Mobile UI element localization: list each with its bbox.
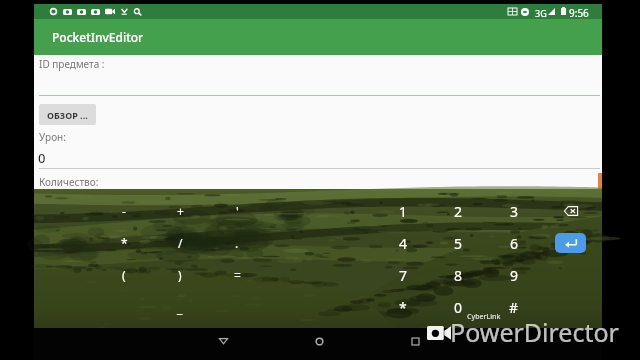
button[interactable]: '	[210, 196, 264, 226]
staticText: 1	[399, 202, 408, 221]
staticText: -	[122, 203, 126, 219]
button[interactable]: 0	[431, 292, 485, 322]
staticText: 3	[510, 202, 519, 221]
staticText: '	[236, 203, 239, 219]
other: PowerDirector	[427, 326, 451, 340]
staticText: 5	[454, 234, 463, 253]
staticText: 7	[399, 266, 408, 285]
button[interactable]: Enter	[555, 233, 586, 253]
staticText: Количество:	[39, 175, 99, 189]
button[interactable]: (	[97, 260, 151, 290]
staticText: +	[177, 203, 184, 219]
staticText: 4	[399, 234, 408, 253]
button[interactable]: )	[153, 260, 207, 290]
staticText: )	[178, 267, 182, 283]
staticText: 0	[454, 298, 463, 317]
button[interactable]: =	[210, 260, 264, 290]
button[interactable]: ОБЗОР ...	[39, 104, 96, 125]
staticText: ID предмета :	[39, 57, 105, 71]
button[interactable]: .	[210, 228, 264, 258]
staticText: 0	[38, 149, 46, 167]
button[interactable]: Home	[300, 328, 338, 354]
staticText: Урон:	[39, 130, 66, 144]
button[interactable]: Recents	[396, 328, 434, 354]
button[interactable]: 7	[376, 260, 430, 290]
staticText: #	[509, 298, 519, 317]
button[interactable]: Back	[204, 328, 242, 354]
button[interactable]: 1	[376, 196, 430, 226]
staticText: PowerDirector	[450, 315, 619, 349]
button[interactable]: 8	[431, 260, 485, 290]
staticText: 9	[510, 266, 519, 285]
button[interactable]: #	[487, 292, 541, 322]
staticText: *	[399, 298, 407, 317]
button[interactable]: 3	[487, 196, 541, 226]
button[interactable]: 6	[487, 228, 541, 258]
staticText: ОБЗОР ...	[47, 109, 88, 121]
staticText: 3G	[535, 7, 547, 19]
staticText: 8	[454, 266, 463, 285]
staticText: 6	[510, 234, 519, 253]
button[interactable]: *	[97, 228, 151, 258]
button[interactable]: /	[153, 228, 207, 258]
button[interactable]: -	[97, 196, 151, 226]
staticText: /	[178, 235, 183, 251]
button[interactable]: 2	[431, 196, 485, 226]
button[interactable]: _	[153, 293, 207, 323]
staticText: (	[122, 267, 126, 283]
staticText: 2	[454, 202, 463, 221]
button[interactable]: +	[153, 196, 207, 226]
staticText: .	[235, 235, 239, 251]
button[interactable]: *	[376, 292, 430, 322]
staticText: CyberLink	[467, 312, 501, 322]
button[interactable]: Backspace	[544, 196, 598, 226]
staticText: _	[177, 300, 183, 316]
staticText: 9:56	[569, 6, 589, 20]
staticText: =	[234, 267, 241, 283]
button[interactable]: 4	[376, 228, 430, 258]
button[interactable]: 5	[431, 228, 485, 258]
staticText: PocketInvEditor	[52, 29, 144, 45]
staticText: *	[121, 235, 128, 251]
button[interactable]: 9	[487, 260, 541, 290]
